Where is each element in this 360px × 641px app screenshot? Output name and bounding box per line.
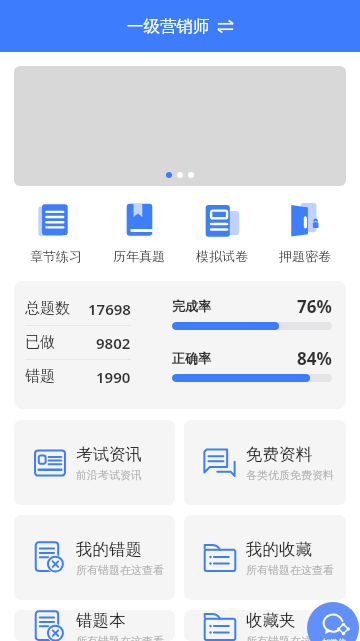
button[interactable]: 免费资料 (184, 420, 346, 505)
staticText: 所有错题在这查看 (76, 634, 164, 641)
button[interactable]: 一级营销师 (117, 10, 244, 43)
staticText: 前沿考试资讯 (76, 468, 142, 482)
staticText: 所有错题在这查看 (246, 563, 334, 577)
staticText: 所有错题在这查看 (246, 634, 334, 641)
staticText: 章节练习 (30, 248, 82, 264)
staticText: 历年真题 (113, 248, 165, 264)
button[interactable]: 我的错题 (14, 515, 175, 600)
button[interactable]: 历年真题 (97, 202, 180, 264)
button[interactable]: 考试资讯 (14, 420, 175, 505)
staticText: 1990 (96, 367, 131, 387)
button[interactable]: 收藏夹 (184, 610, 346, 641)
staticText: 我的错题 (76, 539, 142, 560)
button[interactable]: 章节练习 (14, 202, 97, 264)
staticText: 免费资料 (246, 444, 312, 465)
staticText: 模拟试卷 (196, 248, 248, 264)
staticText: 84% (297, 347, 332, 370)
staticText: 我的收藏 (246, 539, 312, 560)
staticText: 总题数 (25, 299, 70, 318)
staticText: 错题 (25, 367, 55, 386)
staticText: 76% (297, 295, 332, 318)
button[interactable]: 错题本 (14, 610, 175, 641)
staticText: 已做 (25, 333, 55, 352)
staticText: 17698 (88, 299, 131, 319)
button[interactable]: Banner (14, 66, 346, 186)
staticText: 考试资讯 (76, 444, 142, 465)
staticText: 各类优质免费资料 (246, 468, 334, 482)
staticText: 所有错题在这查看 (76, 563, 164, 577)
button[interactable]: 押题密卷 (263, 202, 346, 264)
staticText: 错题本 (76, 610, 126, 631)
staticText: 收藏夹 (246, 610, 296, 631)
staticText: 9802 (96, 333, 131, 353)
button[interactable]: 加微信 (307, 602, 359, 641)
button[interactable]: 模拟试卷 (180, 202, 263, 264)
staticText: 一级营销师 (127, 16, 210, 37)
staticText: 完成率 (172, 298, 211, 314)
staticText: 押题密卷 (279, 248, 331, 264)
button[interactable]: 我的收藏 (184, 515, 346, 600)
staticText: 正确率 (172, 350, 211, 366)
staticText: 加微信 (322, 637, 346, 641)
